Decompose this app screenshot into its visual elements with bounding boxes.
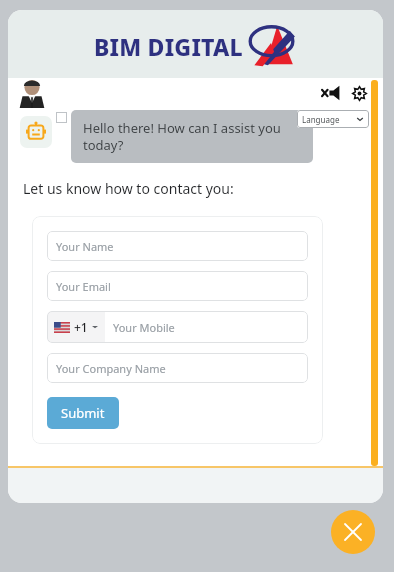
staticText: Your Name	[56, 239, 114, 254]
button[interactable]: Your Email	[47, 271, 308, 301]
button[interactable]: Submit	[47, 397, 119, 429]
staticText: +1	[74, 319, 88, 335]
staticText: Your Mobile	[113, 320, 175, 335]
button[interactable]: Select message	[56, 112, 67, 123]
button[interactable]: Language	[297, 110, 369, 128]
button[interactable]: Your Name	[47, 231, 308, 261]
staticText: BIM DIGITAL	[94, 31, 243, 62]
staticText: Your Email	[56, 279, 111, 294]
staticText: Hello there! How can I assist you today?	[83, 119, 301, 154]
button[interactable]: Close chat	[331, 510, 375, 554]
button[interactable]: Your Company Name	[47, 353, 308, 383]
button[interactable]: Mute sound	[320, 84, 342, 102]
staticText: Submit	[61, 404, 105, 422]
staticText: Your Company Name	[56, 361, 166, 376]
staticText: Let us know how to contact you:	[23, 179, 234, 198]
button[interactable]: Settings	[349, 83, 369, 103]
staticText: Language	[302, 114, 340, 125]
button[interactable]: +1	[47, 311, 308, 343]
